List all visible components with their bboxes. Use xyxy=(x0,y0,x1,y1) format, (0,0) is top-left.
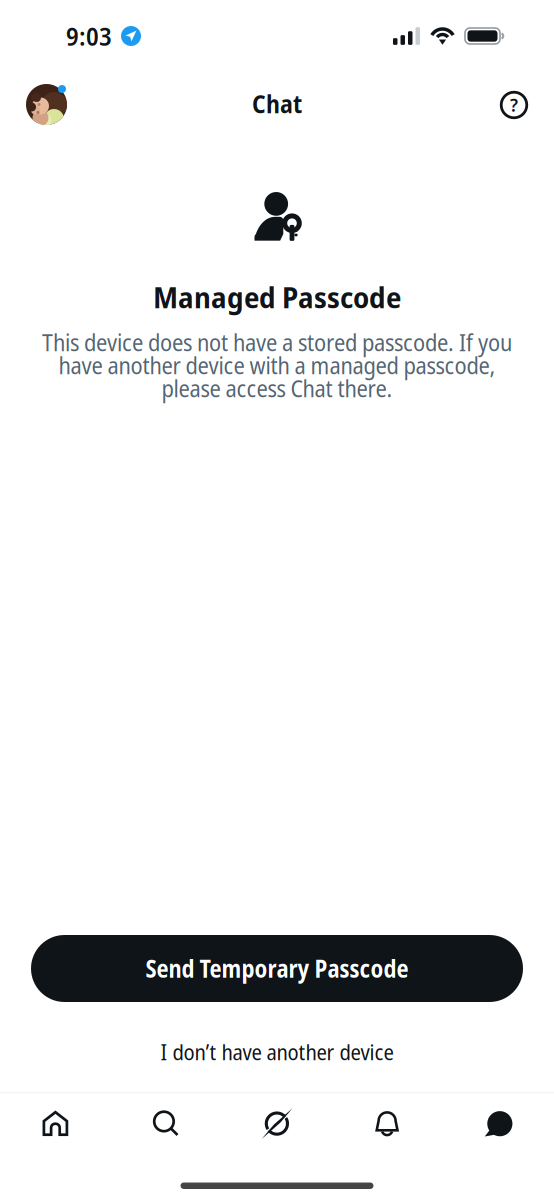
staticText: please access Chat there. xyxy=(161,373,392,404)
button[interactable]: Send Temporary Passcode xyxy=(31,935,523,1002)
button[interactable]: Help xyxy=(486,77,538,129)
staticText: Managed Passcode xyxy=(153,277,401,317)
button[interactable]: Grok xyxy=(222,1093,332,1154)
button[interactable]: Messages xyxy=(443,1093,554,1154)
staticText: Chat xyxy=(252,88,302,120)
button[interactable]: Search xyxy=(111,1093,222,1154)
staticText: 9:03 xyxy=(66,19,112,53)
button[interactable]: Profile xyxy=(26,77,82,129)
staticText: I don’t have another device xyxy=(160,1037,393,1067)
staticText: ? xyxy=(510,92,518,117)
staticText: This device does not have a stored passc… xyxy=(42,327,512,358)
button[interactable]: Home xyxy=(0,1093,111,1154)
staticText: Send Temporary Passcode xyxy=(145,952,408,985)
button[interactable]: Notifications xyxy=(332,1093,443,1154)
button[interactable]: I don’t have another device xyxy=(0,1030,554,1074)
staticText: have another device with a managed passc… xyxy=(58,350,495,381)
